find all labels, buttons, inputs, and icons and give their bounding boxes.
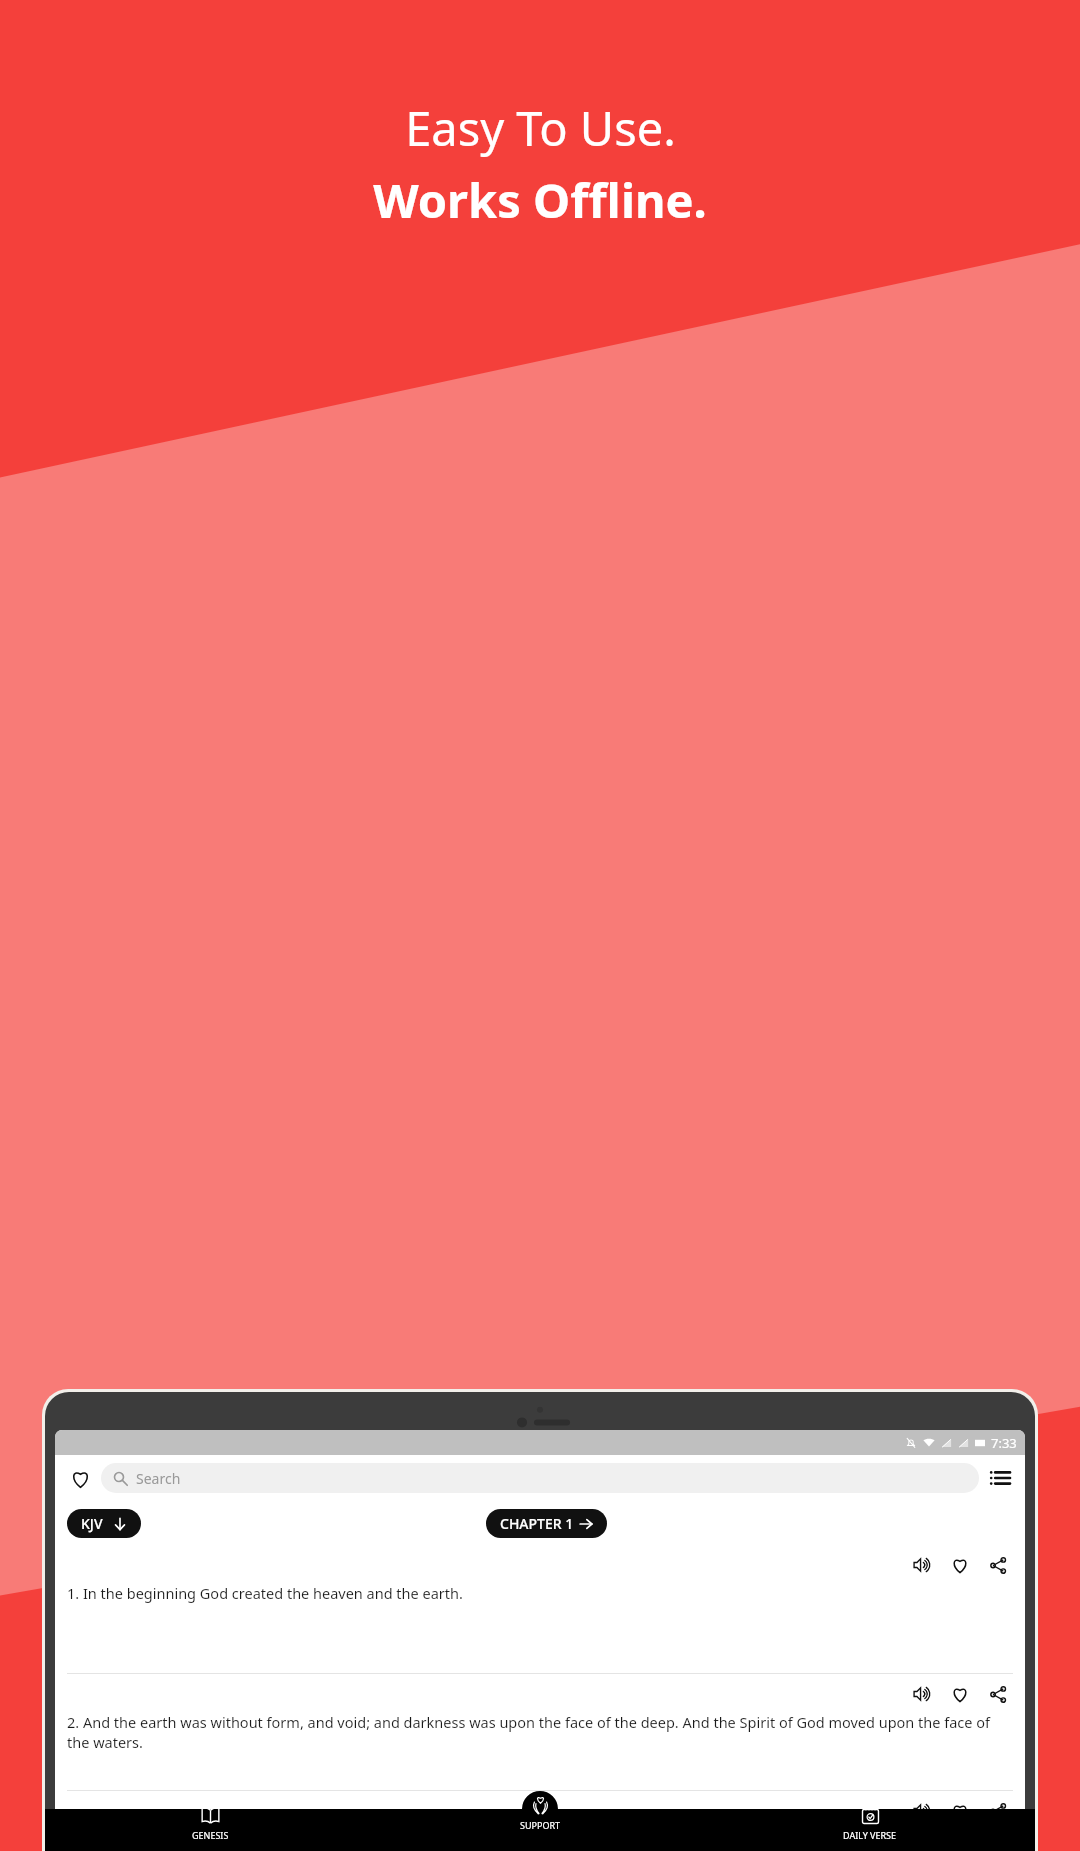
button[interactable]: KJV bbox=[67, 1509, 141, 1538]
staticText: GENESIS bbox=[192, 1829, 229, 1841]
button[interactable]: Listen bbox=[55, 1545, 1025, 1673]
button[interactable]: Favorite bbox=[947, 1798, 973, 1824]
button[interactable]: Listen bbox=[909, 1681, 935, 1707]
button[interactable]: Share bbox=[985, 1552, 1011, 1578]
button[interactable]: Menu bbox=[985, 1463, 1015, 1493]
staticText: Works Offline. bbox=[373, 168, 707, 232]
button[interactable]: GENESIS bbox=[45, 1791, 375, 1843]
staticText: KJV bbox=[81, 1514, 103, 1533]
staticText: 3. And God said, Let there be light: and… bbox=[67, 1829, 440, 1849]
button[interactable]: Listen bbox=[55, 1674, 1025, 1790]
button[interactable]: Favorites bbox=[65, 1463, 95, 1493]
button[interactable]: Share bbox=[985, 1798, 1011, 1824]
staticText: DAILY VERSE bbox=[843, 1829, 897, 1841]
button[interactable]: Favorite bbox=[947, 1681, 973, 1707]
staticText: Easy To Use. bbox=[405, 96, 676, 160]
staticText: SUPPORT bbox=[520, 1819, 561, 1831]
button[interactable]: CHAPTER 1 bbox=[486, 1509, 607, 1538]
button[interactable]: DAILY VERSE bbox=[705, 1791, 1035, 1843]
button[interactable]: SUPPORT bbox=[375, 1791, 705, 1843]
staticText: 7:33 bbox=[991, 1434, 1017, 1452]
button[interactable]: Share bbox=[985, 1681, 1011, 1707]
button[interactable]: Listen bbox=[909, 1552, 935, 1578]
button[interactable]: Listen bbox=[55, 1791, 1025, 1851]
button[interactable]: Listen bbox=[909, 1798, 935, 1824]
staticText: 2. And the earth was without form, and v… bbox=[67, 1712, 1013, 1753]
staticText: 1. In the beginning God created the heav… bbox=[67, 1583, 463, 1603]
staticText: Search bbox=[136, 1469, 181, 1488]
button[interactable]: Search bbox=[101, 1463, 979, 1493]
button[interactable]: Favorite bbox=[947, 1552, 973, 1578]
staticText: CHAPTER 1 bbox=[500, 1514, 574, 1533]
